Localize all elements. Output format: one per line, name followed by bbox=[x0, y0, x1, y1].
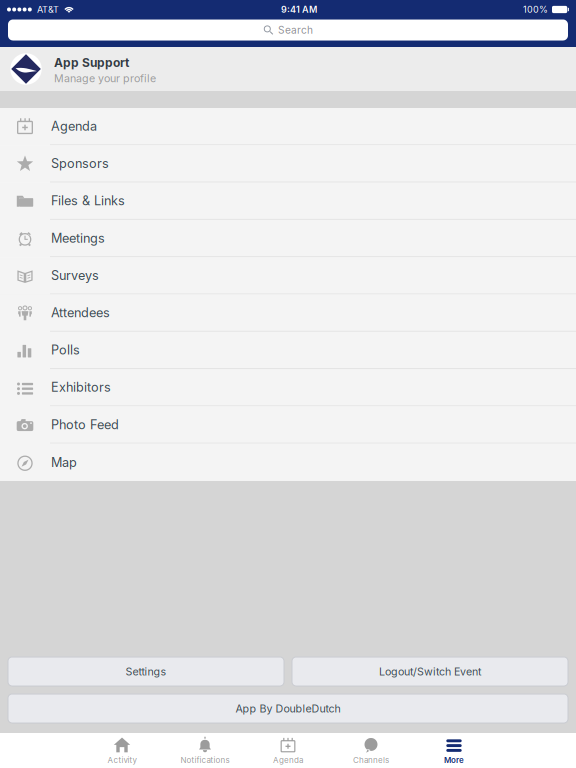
staticText: Exhibitors bbox=[51, 380, 111, 395]
staticText: Search bbox=[278, 24, 313, 36]
button[interactable]: Notifications bbox=[163, 733, 246, 768]
button[interactable]: Channels bbox=[329, 733, 412, 768]
staticText: 100% bbox=[523, 4, 548, 15]
staticText: Logout/Switch Event bbox=[379, 665, 481, 678]
staticText: Surveys bbox=[51, 268, 99, 283]
staticText: Agenda bbox=[273, 755, 303, 765]
staticText: Manage your profile bbox=[54, 72, 156, 85]
button[interactable]: Surveys bbox=[0, 257, 576, 294]
button[interactable]: Activity bbox=[80, 733, 163, 768]
staticText: App Support bbox=[54, 55, 129, 70]
button[interactable]: Polls bbox=[0, 332, 576, 369]
button[interactable]: Photo Feed bbox=[0, 406, 576, 444]
staticText: Files & Links bbox=[51, 193, 125, 208]
staticText: Activity bbox=[107, 755, 136, 765]
staticText: Channels bbox=[353, 755, 389, 765]
staticText: AT&T bbox=[37, 4, 59, 15]
button[interactable]: App Support bbox=[0, 47, 576, 91]
staticText: Map bbox=[51, 455, 77, 470]
button[interactable]: More bbox=[412, 733, 495, 768]
button[interactable]: Meetings bbox=[0, 220, 576, 257]
button[interactable]: Agenda bbox=[0, 108, 576, 145]
staticText: Agenda bbox=[51, 118, 97, 134]
staticText: App By DoubleDutch bbox=[235, 702, 340, 715]
staticText: Meetings bbox=[51, 230, 105, 246]
staticText: 9:41 AM bbox=[281, 4, 317, 15]
staticText: Sponsors bbox=[51, 156, 109, 171]
button[interactable]: Settings bbox=[8, 657, 284, 686]
button[interactable]: Logout/Switch Event bbox=[292, 657, 568, 686]
staticText: Settings bbox=[125, 665, 166, 678]
staticText: Attendees bbox=[51, 305, 110, 320]
staticText: Photo Feed bbox=[51, 417, 119, 432]
button[interactable]: Attendees bbox=[0, 294, 576, 332]
button[interactable]: Sponsors bbox=[0, 145, 576, 183]
button[interactable]: Map bbox=[0, 444, 576, 481]
staticText: More bbox=[444, 755, 464, 765]
button[interactable]: App By DoubleDutch bbox=[8, 694, 568, 723]
staticText: Notifications bbox=[180, 755, 229, 765]
staticText: Polls bbox=[51, 342, 80, 358]
button[interactable]: Files & Links bbox=[0, 183, 576, 220]
button[interactable]: Exhibitors bbox=[0, 369, 576, 406]
button[interactable]: Agenda bbox=[246, 733, 329, 768]
